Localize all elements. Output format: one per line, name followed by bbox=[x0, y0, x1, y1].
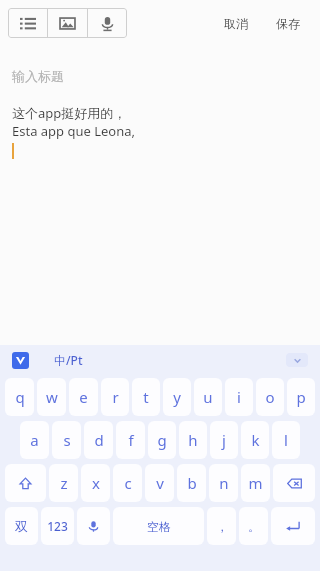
button[interactable]: k bbox=[241, 421, 269, 459]
staticText: o bbox=[265, 387, 275, 407]
button[interactable]: Hide keyboard bbox=[286, 353, 308, 367]
button[interactable]: 双 bbox=[5, 507, 38, 545]
button[interactable]: Bullet list bbox=[8, 8, 47, 38]
button[interactable]: d bbox=[84, 421, 113, 459]
staticText: 输入标题 bbox=[12, 68, 64, 84]
button[interactable]: 空格 bbox=[113, 507, 204, 545]
staticText: g bbox=[157, 430, 167, 450]
staticText: 双 bbox=[15, 518, 28, 534]
staticText: 123 bbox=[47, 518, 68, 534]
staticText: y bbox=[173, 387, 181, 407]
staticText: 保存 bbox=[276, 16, 300, 31]
button[interactable]: o bbox=[256, 378, 284, 416]
button[interactable]: Insert image bbox=[48, 8, 87, 38]
button[interactable]: j bbox=[210, 421, 238, 459]
button[interactable]: g bbox=[148, 421, 176, 459]
button[interactable]: i bbox=[225, 378, 253, 416]
button[interactable]: z bbox=[49, 464, 78, 502]
staticText: l bbox=[284, 430, 288, 450]
button[interactable]: 123 bbox=[41, 507, 74, 545]
button[interactable]: u bbox=[194, 378, 222, 416]
button[interactable]: n bbox=[209, 464, 238, 502]
staticText: p bbox=[296, 387, 306, 407]
button[interactable]: v bbox=[145, 464, 174, 502]
staticText: d bbox=[94, 430, 104, 450]
staticText: v bbox=[156, 473, 164, 493]
button[interactable]: y bbox=[163, 378, 191, 416]
button[interactable]: t bbox=[132, 378, 160, 416]
button[interactable]: c bbox=[113, 464, 142, 502]
button[interactable]: 。 bbox=[239, 507, 268, 545]
staticText: c bbox=[124, 473, 132, 493]
button[interactable]: l bbox=[272, 421, 300, 459]
button[interactable]: Input method logo bbox=[12, 352, 29, 369]
staticText: w bbox=[46, 387, 58, 407]
staticText: 中/Pt bbox=[54, 352, 83, 368]
button[interactable]: Voice input bbox=[77, 507, 110, 545]
staticText: u bbox=[203, 387, 213, 407]
button[interactable]: s bbox=[52, 421, 81, 459]
staticText: i bbox=[237, 387, 241, 407]
button[interactable]: w bbox=[37, 378, 66, 416]
button[interactable]: ， bbox=[207, 507, 236, 545]
staticText: j bbox=[222, 430, 226, 450]
staticText: 取消 bbox=[224, 16, 248, 31]
button[interactable]: Enter bbox=[271, 507, 315, 545]
button[interactable]: f bbox=[116, 421, 145, 459]
staticText: h bbox=[188, 430, 198, 450]
staticText: x bbox=[92, 473, 100, 493]
button[interactable]: Shift bbox=[5, 464, 46, 502]
staticText: e bbox=[79, 387, 88, 407]
staticText: f bbox=[128, 430, 134, 450]
staticText: Esta app que Leona, bbox=[12, 122, 136, 140]
staticText: t bbox=[143, 387, 149, 407]
button[interactable]: 输入标题 bbox=[0, 68, 320, 84]
button[interactable]: h bbox=[179, 421, 207, 459]
button[interactable]: Voice input bbox=[88, 8, 127, 38]
button[interactable]: m bbox=[241, 464, 270, 502]
staticText: 这个app挺好用的， bbox=[12, 104, 127, 122]
staticText: m bbox=[248, 473, 263, 493]
staticText: 。 bbox=[248, 519, 260, 534]
staticText: z bbox=[60, 473, 68, 493]
staticText: s bbox=[63, 430, 71, 450]
button[interactable]: b bbox=[177, 464, 206, 502]
staticText: ， bbox=[216, 519, 228, 534]
staticText: a bbox=[30, 430, 39, 450]
button[interactable]: Backspace bbox=[273, 464, 315, 502]
button[interactable]: 取消 bbox=[218, 12, 254, 35]
button[interactable]: e bbox=[69, 378, 98, 416]
staticText: q bbox=[15, 387, 25, 407]
button[interactable]: r bbox=[101, 378, 129, 416]
staticText: n bbox=[219, 473, 229, 493]
button[interactable]: p bbox=[287, 378, 315, 416]
button[interactable]: q bbox=[5, 378, 34, 416]
button[interactable]: 中/Pt bbox=[51, 349, 86, 371]
button[interactable]: a bbox=[20, 421, 49, 459]
button[interactable]: x bbox=[81, 464, 110, 502]
staticText: 空格 bbox=[147, 519, 171, 534]
staticText: r bbox=[112, 387, 119, 407]
button[interactable]: 这个app挺好用的， bbox=[0, 104, 320, 345]
staticText: k bbox=[251, 430, 260, 450]
button[interactable]: 保存 bbox=[270, 12, 306, 35]
staticText: b bbox=[187, 473, 197, 493]
